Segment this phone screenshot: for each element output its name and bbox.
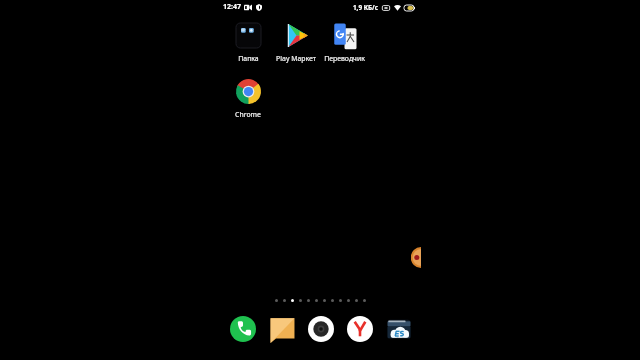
staticText: Chrome: [235, 110, 261, 119]
button[interactable]: Yandex Browser: [340, 310, 379, 348]
button[interactable]: Play Маркет: [272, 23, 320, 63]
staticText: 12:47: [223, 2, 241, 12]
staticText: Переводчик: [324, 54, 365, 63]
button[interactable]: Phone: [223, 310, 262, 348]
button[interactable]: Chrome: [224, 79, 272, 119]
button[interactable]: Папка: [224, 23, 272, 63]
button[interactable]: Camera: [301, 310, 340, 348]
staticText: 1,9 КБ/с: [353, 3, 378, 12]
button[interactable]: Переводчик: [320, 23, 368, 63]
staticText: Папка: [238, 54, 259, 63]
staticText: Play Маркет: [276, 54, 316, 63]
button[interactable]: File Explorer: [379, 310, 418, 348]
button[interactable]: Messages: [262, 310, 301, 348]
